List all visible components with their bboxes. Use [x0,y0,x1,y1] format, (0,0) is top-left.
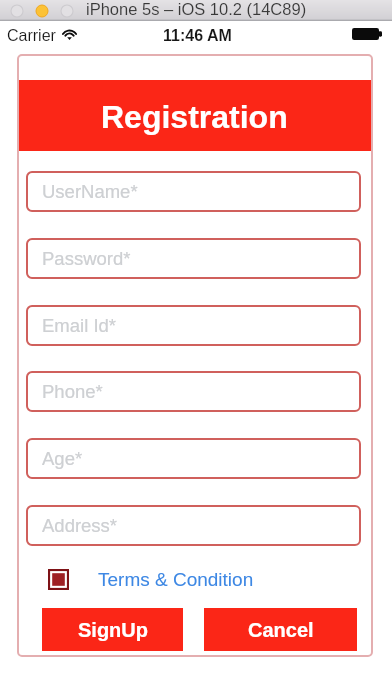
staticText: Cancel [248,619,314,641]
button[interactable]: Cancel [204,608,357,651]
staticText: Age* [42,448,83,469]
staticText: SignUp [78,619,148,641]
staticText: Password* [42,248,131,269]
staticText: Email Id* [42,315,117,336]
button[interactable]: Accept terms checkbox [48,569,69,590]
button[interactable]: Window button [11,5,23,17]
other: Wi-Fi signal [62,29,77,40]
staticText: UserName* [42,181,138,202]
button[interactable]: Minimise window [36,5,48,17]
button[interactable]: Window button [61,5,73,17]
button[interactable]: SignUp [42,608,183,651]
button[interactable]: Age* [26,438,361,479]
button[interactable]: Password* [26,238,361,279]
staticText: Address* [42,515,118,536]
button[interactable]: Email Id* [26,305,361,346]
button[interactable]: UserName* [26,171,361,212]
button[interactable]: Phone* [26,371,361,412]
button[interactable]: Terms & Condition [98,569,254,590]
staticText: Registration [101,99,288,135]
staticText: 11:46 AM [163,27,232,45]
staticText: iPhone 5s – iOS 10.2 (14C89) [86,0,307,18]
staticText: Terms & Condition [98,569,254,590]
staticText: Carrier [7,27,56,45]
staticText: Phone* [42,381,103,402]
other: Battery full [352,28,382,40]
button[interactable]: Address* [26,505,361,546]
